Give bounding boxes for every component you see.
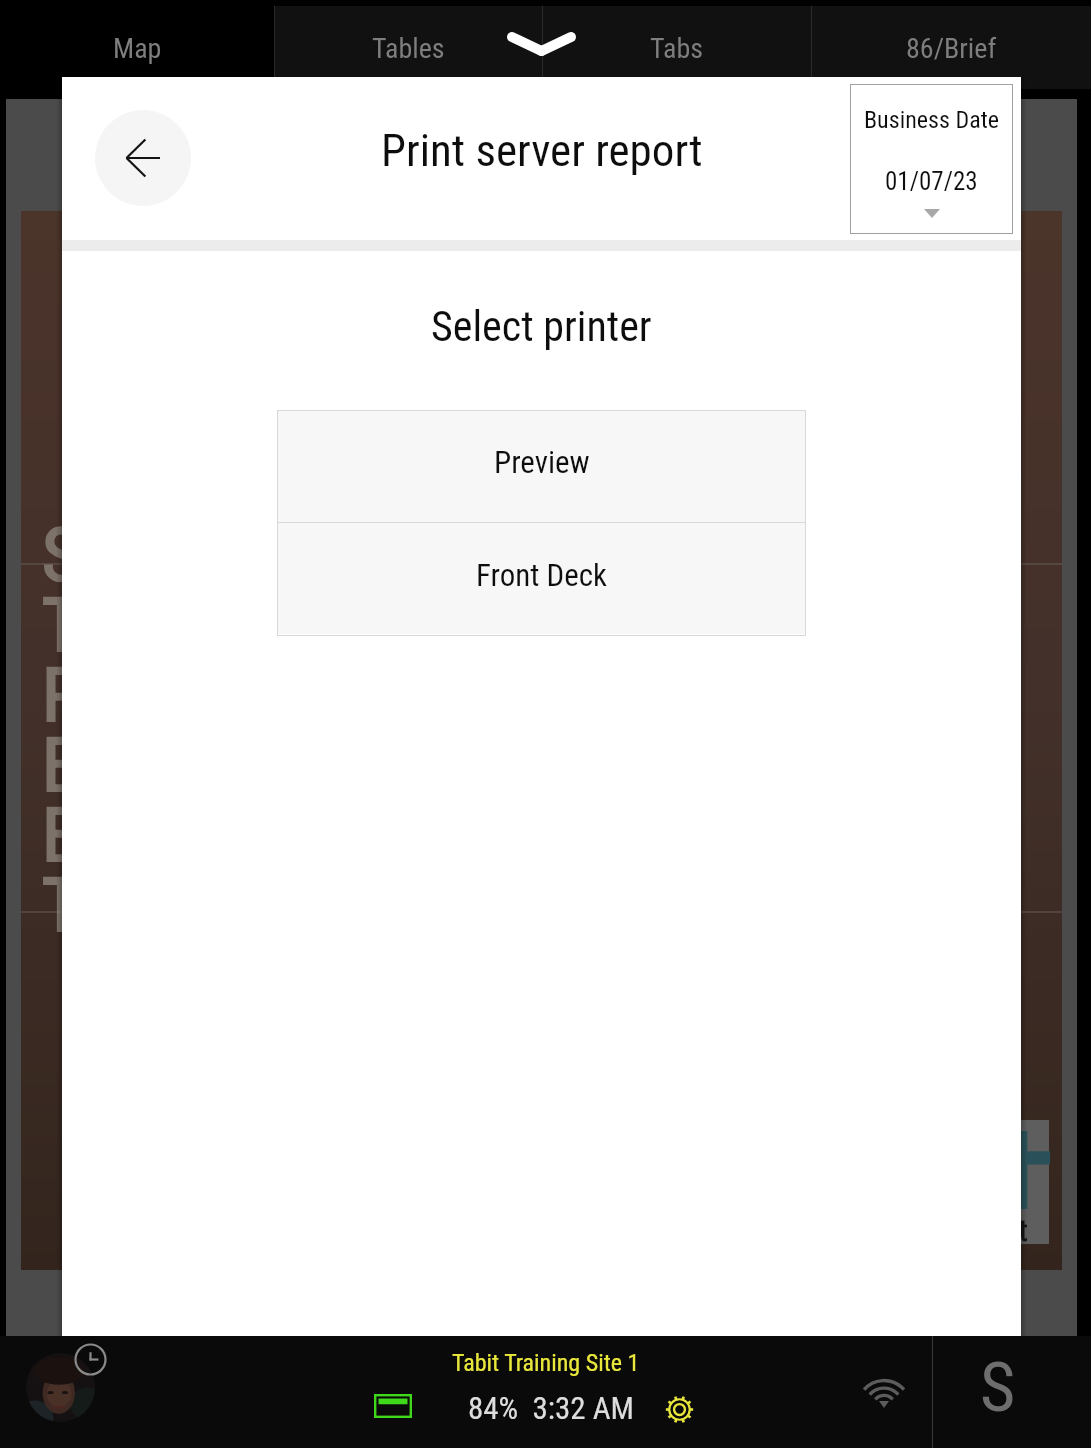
button[interactable]: Tabs <box>543 6 811 89</box>
button[interactable]: Settings <box>664 1394 695 1425</box>
staticText: Tables <box>372 32 445 65</box>
staticText: Preview <box>494 444 590 480</box>
button[interactable]: S <box>933 1336 1091 1448</box>
button[interactable]: Clock in <box>74 1343 107 1376</box>
staticText: Select printer <box>431 302 652 351</box>
staticText: Tabit Training Site 1 <box>452 1349 640 1377</box>
button[interactable]: Business Date <box>850 84 1013 234</box>
staticText: R <box>42 652 82 722</box>
staticText: Business Date <box>864 106 999 134</box>
button[interactable]: Preview <box>277 410 806 522</box>
staticText: E <box>42 792 79 862</box>
button[interactable]: Map <box>0 6 274 89</box>
button[interactable]: 86/Brief <box>812 6 1091 89</box>
staticText: 86/Brief <box>906 32 997 65</box>
staticText: Tabs <box>650 32 704 65</box>
button[interactable]: Wi-Fi <box>857 1367 911 1407</box>
staticText: S <box>980 1348 1016 1428</box>
staticText: 84% 3:32 AM <box>468 1390 635 1426</box>
staticText: S <box>42 512 81 582</box>
staticText: Front Deck <box>476 557 608 593</box>
staticText: E <box>42 722 79 792</box>
staticText: T <box>42 862 81 932</box>
staticText: rt <box>1009 1213 1028 1248</box>
button[interactable]: Collapse panel <box>501 27 582 60</box>
staticText: Print server report <box>381 124 703 177</box>
button[interactable]: Back <box>95 110 191 206</box>
button[interactable]: Front Deck <box>277 523 806 634</box>
button[interactable]: Tables <box>275 6 542 89</box>
staticText: 01/07/23 <box>885 167 978 196</box>
staticText: Map <box>113 32 162 65</box>
button[interactable]: User profile <box>26 1353 95 1422</box>
staticText: T <box>42 582 81 652</box>
